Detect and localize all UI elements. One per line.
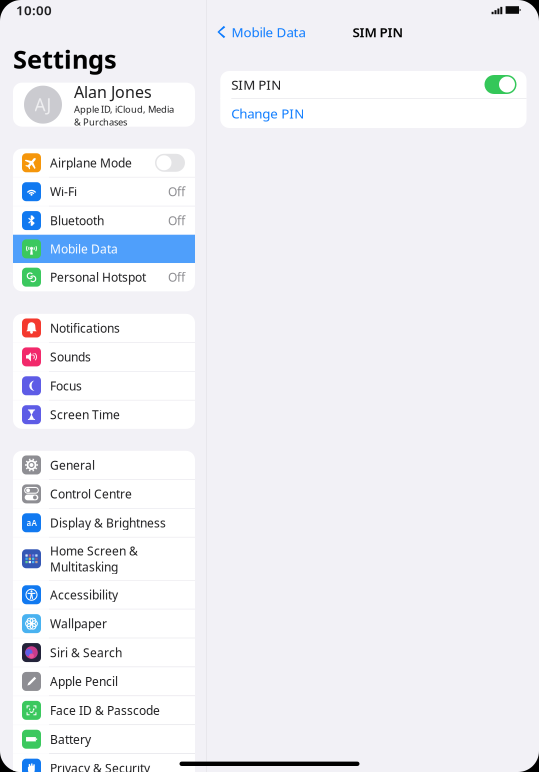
staticText: Bluetooth bbox=[50, 213, 104, 228]
staticText: Siri & Search bbox=[50, 645, 122, 660]
staticText: Battery bbox=[50, 731, 91, 747]
staticText: Screen Time bbox=[50, 407, 120, 423]
button[interactable]: Accessibility bbox=[13, 581, 195, 609]
staticText: Off bbox=[168, 269, 185, 285]
button[interactable]: Mobile Data bbox=[13, 235, 195, 263]
button[interactable]: Screen Time bbox=[13, 400, 195, 429]
staticText: Wallpaper bbox=[50, 616, 107, 632]
button[interactable]: Sounds bbox=[13, 343, 195, 371]
staticText: Multitasking bbox=[50, 559, 118, 575]
staticText: & Purchases bbox=[74, 116, 127, 128]
staticText: Change PIN bbox=[231, 104, 304, 122]
button[interactable]: Mobile Data bbox=[217, 19, 305, 45]
staticText: 10:00 bbox=[16, 1, 52, 19]
staticText: SIM PIN bbox=[231, 76, 281, 93]
button[interactable]: AJ bbox=[13, 83, 195, 127]
button[interactable]: Home Screen & bbox=[13, 537, 195, 580]
button[interactable]: Wi-Fi bbox=[13, 177, 195, 206]
button[interactable]: aA bbox=[13, 509, 195, 537]
staticText: Airplane Mode bbox=[50, 155, 132, 171]
staticText: Control Centre bbox=[50, 486, 132, 502]
staticText: Apple Pencil bbox=[50, 673, 118, 689]
staticText: aA bbox=[26, 517, 36, 528]
staticText: Off bbox=[168, 213, 185, 228]
button[interactable]: Siri & Search bbox=[13, 638, 195, 667]
staticText: Home Screen & bbox=[50, 543, 138, 559]
staticText: Off bbox=[168, 184, 185, 200]
button[interactable]: Bluetooth bbox=[13, 206, 195, 235]
button[interactable]: Change PIN bbox=[220, 99, 526, 128]
staticText: Display & Brightness bbox=[50, 515, 166, 531]
staticText: Accessibility bbox=[50, 587, 118, 603]
staticText: Focus bbox=[50, 378, 82, 394]
staticText: Notifications bbox=[50, 320, 120, 336]
staticText: Wi-Fi bbox=[50, 184, 77, 200]
button[interactable]: Notifications bbox=[13, 314, 195, 342]
button[interactable]: Focus bbox=[13, 372, 195, 400]
staticText: Alan Jones bbox=[74, 81, 152, 102]
staticText: AJ bbox=[34, 93, 51, 116]
staticText: Settings bbox=[13, 42, 117, 76]
button[interactable]: SIM PIN bbox=[220, 71, 526, 98]
button[interactable]: Airplane Mode bbox=[13, 149, 195, 177]
button[interactable]: General bbox=[13, 451, 195, 479]
staticText: Apple ID, iCloud, Media bbox=[74, 103, 174, 115]
staticText: Mobile Data bbox=[50, 241, 118, 257]
staticText: Sounds bbox=[50, 349, 91, 365]
staticText: Mobile Data bbox=[231, 23, 305, 41]
staticText: Privacy & Security bbox=[50, 760, 150, 772]
button[interactable]: Battery bbox=[13, 725, 195, 753]
button[interactable]: Privacy & Security bbox=[13, 754, 195, 772]
staticText: General bbox=[50, 457, 95, 473]
staticText: Face ID & Passcode bbox=[50, 702, 160, 718]
button[interactable]: Apple Pencil bbox=[13, 667, 195, 696]
button[interactable]: Wallpaper bbox=[13, 609, 195, 638]
staticText: SIM PIN bbox=[352, 23, 403, 41]
button[interactable]: Personal Hotspot bbox=[13, 263, 195, 291]
button[interactable]: Face ID & Passcode bbox=[13, 696, 195, 724]
staticText: Personal Hotspot bbox=[50, 269, 146, 285]
button[interactable]: Control Centre bbox=[13, 480, 195, 508]
